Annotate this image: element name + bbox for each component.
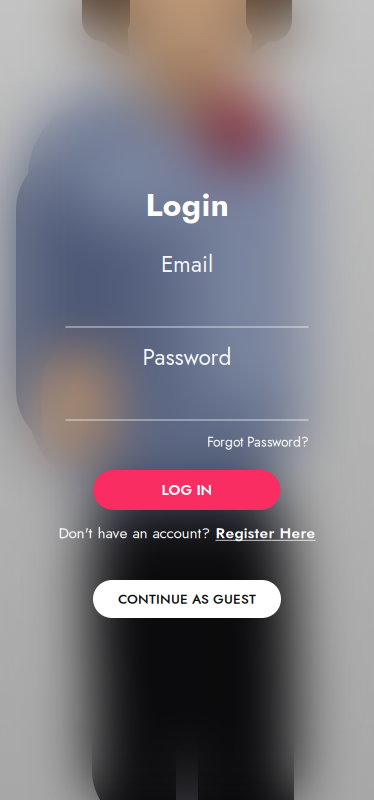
staticText: Email	[161, 248, 213, 280]
button[interactable]: LOG IN	[93, 470, 280, 510]
staticText: Register Here	[215, 522, 315, 544]
button[interactable]: Register Here	[215, 522, 315, 544]
staticText: Forgot Password?	[207, 432, 309, 452]
staticText: Login	[145, 182, 228, 228]
button[interactable]: Forgot Password?	[205, 428, 311, 456]
button[interactable]: CONTINUE AS GUEST	[93, 580, 281, 618]
staticText: Don't have an account?	[58, 522, 210, 544]
staticText: LOG IN	[161, 479, 212, 501]
staticText: CONTINUE AS GUEST	[118, 589, 256, 609]
staticText: Password	[142, 341, 231, 373]
